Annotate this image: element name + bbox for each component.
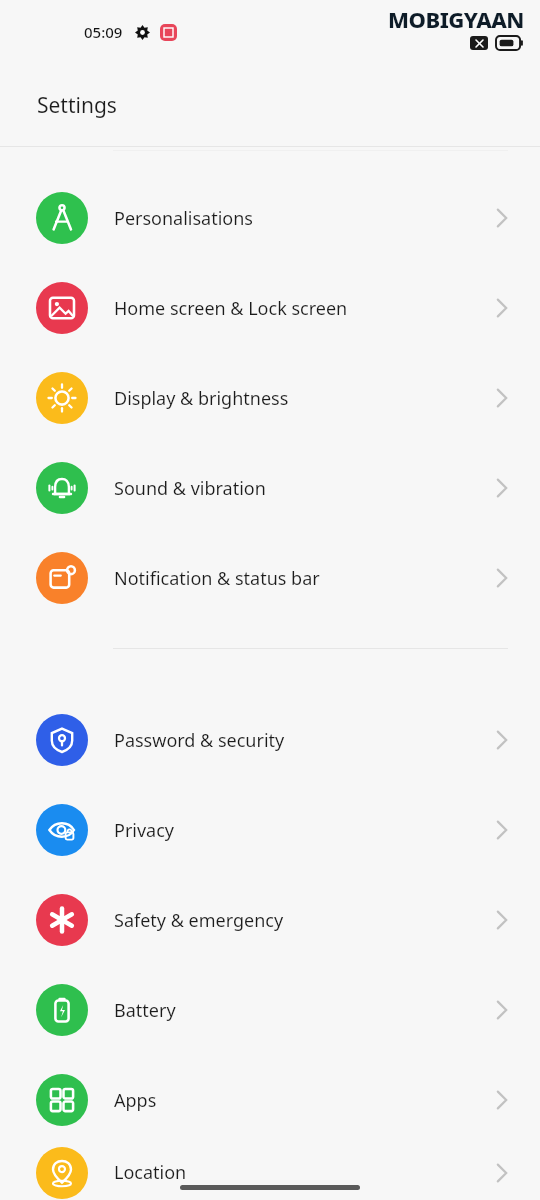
staticText: Sound & vibration [114, 476, 496, 501]
staticText: MOBIGYAAN [388, 4, 524, 34]
staticText: Display & brightness [114, 386, 496, 411]
button[interactable]: Battery [0, 965, 540, 1055]
staticText: Safety & emergency [114, 908, 496, 933]
button[interactable]: Sound & vibration [0, 443, 540, 533]
staticText: Password & security [114, 728, 496, 753]
staticText: Home screen & Lock screen [114, 296, 496, 321]
staticText: Battery [114, 998, 496, 1023]
button[interactable]: Safety & emergency [0, 875, 540, 965]
button[interactable]: Home screen & Lock screen [0, 263, 540, 353]
staticText: Apps [114, 1088, 496, 1113]
button[interactable]: Notification & status bar [0, 533, 540, 623]
button[interactable]: Privacy [0, 785, 540, 875]
button[interactable]: Apps [0, 1055, 540, 1145]
staticText: Settings [37, 91, 117, 120]
staticText: 05:09 [84, 22, 123, 42]
staticText: Location [114, 1160, 496, 1185]
button[interactable]: Password & security [0, 695, 540, 785]
button[interactable]: Personalisations [0, 173, 540, 263]
staticText: Notification & status bar [114, 566, 496, 591]
staticText: Privacy [114, 818, 496, 843]
button[interactable]: Display & brightness [0, 353, 540, 443]
staticText: Personalisations [114, 206, 496, 231]
button[interactable]: Location [0, 1145, 540, 1200]
